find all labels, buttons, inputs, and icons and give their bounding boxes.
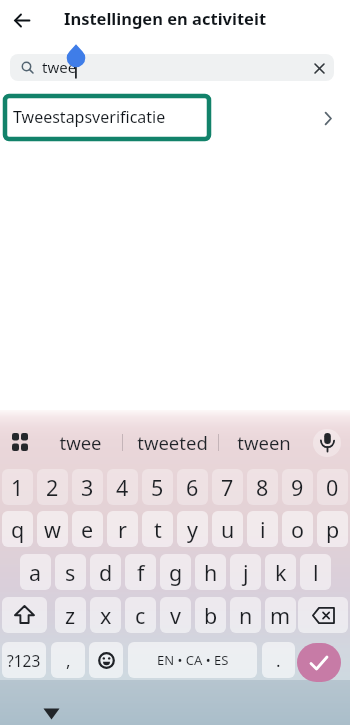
button[interactable]: m bbox=[265, 597, 296, 633]
button[interactable]: t bbox=[142, 511, 173, 547]
button[interactable]: y bbox=[177, 511, 208, 547]
button[interactable]: h bbox=[195, 554, 226, 590]
staticText: t bbox=[154, 515, 162, 544]
button[interactable]: EN • CA • ES bbox=[128, 642, 257, 678]
staticText: twee bbox=[59, 430, 102, 455]
button[interactable]: q bbox=[2, 511, 33, 547]
button[interactable]: 7 bbox=[212, 469, 243, 505]
button[interactable]: f bbox=[125, 554, 156, 590]
staticText: . bbox=[276, 649, 281, 672]
button[interactable]: 5 bbox=[142, 469, 173, 505]
staticText: m bbox=[270, 601, 291, 630]
button[interactable]: z bbox=[55, 597, 86, 633]
button[interactable]: s bbox=[55, 554, 86, 590]
button[interactable]: j bbox=[230, 554, 261, 590]
button[interactable]: 8 bbox=[247, 469, 278, 505]
button[interactable] bbox=[297, 643, 341, 682]
staticText: a bbox=[29, 558, 42, 587]
button[interactable]: 2 bbox=[37, 469, 68, 505]
staticText: Tweestapsverificatie bbox=[13, 106, 166, 128]
button[interactable]: 1 bbox=[2, 469, 33, 505]
button[interactable]: 0 bbox=[317, 469, 348, 505]
staticText: y bbox=[187, 515, 198, 544]
button[interactable]: tween bbox=[224, 426, 304, 458]
staticText: r bbox=[118, 515, 127, 544]
staticText: b bbox=[204, 601, 218, 630]
staticText: EN • CA • ES bbox=[157, 651, 229, 669]
button[interactable]: tweeted bbox=[126, 426, 218, 458]
staticText: k bbox=[275, 558, 287, 587]
button[interactable]: o bbox=[282, 511, 313, 547]
staticText: ?123 bbox=[7, 650, 41, 671]
staticText: h bbox=[204, 558, 218, 587]
staticText: , bbox=[66, 649, 71, 672]
button[interactable]: c bbox=[125, 597, 156, 633]
button[interactable]: 3 bbox=[72, 469, 103, 505]
button[interactable] bbox=[89, 642, 123, 678]
staticText: 6 bbox=[186, 473, 199, 502]
button[interactable]: u bbox=[212, 511, 243, 547]
button[interactable]: twee bbox=[54, 426, 106, 458]
button[interactable]: twee bbox=[10, 54, 334, 81]
button[interactable]: x bbox=[90, 597, 121, 633]
button[interactable]: 9 bbox=[282, 469, 313, 505]
button[interactable]: l bbox=[300, 554, 331, 590]
button[interactable] bbox=[298, 597, 348, 633]
button[interactable] bbox=[2, 597, 47, 633]
button[interactable] bbox=[31, 701, 71, 725]
staticText: q bbox=[11, 515, 25, 544]
staticText: o bbox=[291, 515, 305, 544]
staticText: i bbox=[260, 515, 266, 544]
staticText: l bbox=[313, 558, 319, 587]
button[interactable]: , bbox=[51, 642, 85, 678]
staticText: f bbox=[137, 558, 145, 587]
button[interactable]: r bbox=[107, 511, 138, 547]
staticText: j bbox=[243, 558, 249, 587]
button[interactable]: w bbox=[37, 511, 68, 547]
staticText: 8 bbox=[256, 473, 269, 502]
button[interactable] bbox=[4, 426, 36, 458]
staticText: twee bbox=[42, 57, 77, 77]
staticText: tween bbox=[237, 430, 291, 455]
button[interactable]: k bbox=[265, 554, 296, 590]
button[interactable]: e bbox=[72, 511, 103, 547]
button[interactable]: b bbox=[195, 597, 226, 633]
staticText: v bbox=[170, 601, 181, 630]
button[interactable]: n bbox=[230, 597, 261, 633]
staticText: 5 bbox=[151, 473, 164, 502]
staticText: Instellingen en activiteit bbox=[64, 7, 267, 29]
staticText: u bbox=[221, 515, 235, 544]
staticText: 2 bbox=[46, 473, 59, 502]
staticText: p bbox=[326, 515, 340, 544]
button[interactable]: v bbox=[160, 597, 191, 633]
staticText: 1 bbox=[11, 473, 24, 502]
staticText: s bbox=[65, 558, 76, 587]
staticText: 4 bbox=[116, 473, 129, 502]
button[interactable] bbox=[313, 429, 341, 457]
staticText: x bbox=[100, 601, 112, 630]
button[interactable]: d bbox=[90, 554, 121, 590]
staticText: z bbox=[65, 601, 76, 630]
staticText: g bbox=[169, 558, 183, 587]
staticText: c bbox=[135, 601, 146, 630]
staticText: w bbox=[44, 515, 61, 544]
button[interactable] bbox=[307, 56, 332, 81]
button[interactable]: 4 bbox=[107, 469, 138, 505]
staticText: 3 bbox=[81, 473, 94, 502]
staticText: tweeted bbox=[137, 430, 208, 455]
button[interactable] bbox=[6, 6, 38, 34]
button[interactable]: ?123 bbox=[2, 642, 46, 678]
staticText: n bbox=[239, 601, 253, 630]
staticText: 7 bbox=[221, 473, 234, 502]
button[interactable]: g bbox=[160, 554, 191, 590]
staticText: e bbox=[81, 515, 94, 544]
button[interactable]: a bbox=[20, 554, 51, 590]
button[interactable]: 6 bbox=[177, 469, 208, 505]
button[interactable]: p bbox=[317, 511, 348, 547]
button[interactable]: i bbox=[247, 511, 278, 547]
button[interactable]: Tweestapsverificatie bbox=[0, 88, 350, 148]
button[interactable]: . bbox=[262, 642, 295, 678]
staticText: 9 bbox=[291, 473, 304, 502]
staticText: 0 bbox=[326, 473, 339, 502]
staticText: d bbox=[99, 558, 113, 587]
